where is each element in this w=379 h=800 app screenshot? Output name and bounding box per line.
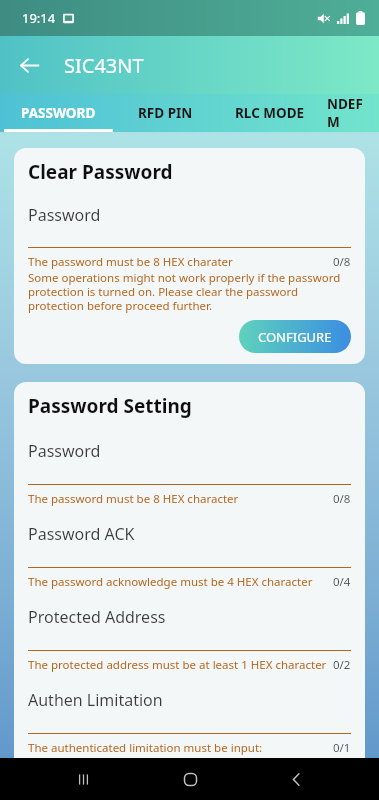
staticText: 0/8 [333, 254, 351, 270]
button[interactable]: Back [272, 758, 320, 800]
staticText: The password must be 8 HEX character [28, 491, 239, 507]
staticText: Protected Address [28, 606, 166, 628]
button[interactable]: Back [7, 43, 51, 87]
button[interactable]: PASSWORD [0, 94, 117, 132]
button[interactable]: Home [166, 758, 214, 800]
staticText: 0/1 [333, 740, 351, 756]
button[interactable]: RLC MODE [213, 94, 327, 132]
button[interactable]: RFD PIN [117, 94, 213, 132]
staticText: 0/4 [333, 574, 351, 590]
staticText: The password acknowledge must be 4 HEX c… [28, 574, 313, 590]
staticText: Password [28, 440, 101, 462]
staticText: PASSWORD [21, 104, 96, 122]
staticText: Clear Password [28, 159, 173, 185]
staticText: 0/2 [333, 657, 351, 673]
staticText: SIC43NT [64, 52, 144, 79]
staticText: The password must be 8 HEX charater [28, 254, 233, 270]
staticText: Password [28, 204, 101, 226]
button[interactable]: NDEF M [327, 94, 379, 132]
staticText: CONFIGURE [258, 328, 332, 346]
staticText: Password Setting [28, 393, 192, 419]
staticText: The protected address must be at least 1… [28, 657, 327, 673]
staticText: The authenticated limitation must be inp… [28, 740, 263, 783]
button[interactable]: CONFIGURE [239, 320, 351, 353]
staticText: Authen Limitation [28, 689, 163, 711]
staticText: RLC MODE [235, 104, 305, 122]
staticText: 19:14 [22, 9, 56, 27]
staticText: RFD PIN [138, 104, 193, 122]
staticText: Password ACK [28, 523, 135, 545]
staticText: NDEF M [327, 95, 379, 131]
staticText: Some operations might not work properly … [28, 270, 351, 313]
staticText: 0/8 [333, 491, 351, 507]
button[interactable]: Recent apps [59, 758, 107, 800]
